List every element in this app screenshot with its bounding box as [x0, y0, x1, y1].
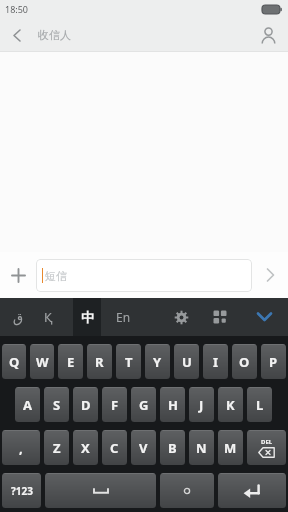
- button[interactable]: R: [87, 344, 112, 379]
- staticText: K: [226, 396, 235, 414]
- button[interactable]: A: [15, 387, 40, 422]
- staticText: Қ: [44, 309, 53, 326]
- button[interactable]: Z: [44, 430, 69, 465]
- button[interactable]: D: [73, 387, 98, 422]
- staticText: Z: [53, 439, 61, 457]
- staticText: O: [239, 353, 250, 371]
- staticText: ?123: [11, 484, 33, 498]
- staticText: I: [213, 353, 219, 371]
- staticText: G: [139, 396, 149, 414]
- button[interactable]: ق: [4, 298, 32, 336]
- button[interactable]: B: [160, 430, 185, 465]
- staticText: T: [125, 353, 133, 371]
- staticText: F: [111, 396, 119, 414]
- staticText: S: [53, 396, 61, 414]
- staticText: DEL: [261, 438, 273, 446]
- button[interactable]: F: [102, 387, 127, 422]
- button[interactable]: [248, 18, 288, 52]
- button[interactable]: ?123: [2, 473, 41, 508]
- button[interactable]: E: [58, 344, 83, 379]
- staticText: J: [199, 396, 204, 414]
- button[interactable]: [0, 252, 36, 298]
- button[interactable]: [218, 473, 286, 508]
- button[interactable]: [0, 18, 34, 52]
- button[interactable]: Q: [2, 344, 26, 379]
- staticText: P: [269, 353, 278, 371]
- button[interactable]: X: [73, 430, 98, 465]
- staticText: Q: [9, 353, 20, 371]
- button[interactable]: U: [174, 344, 199, 379]
- button[interactable]: J: [189, 387, 214, 422]
- button[interactable]: 短信: [36, 259, 252, 292]
- staticText: Y: [153, 353, 162, 371]
- button[interactable]: N: [189, 430, 214, 465]
- button[interactable]: [167, 298, 195, 336]
- button[interactable]: [45, 473, 156, 508]
- staticText: D: [81, 396, 91, 414]
- staticText: U: [182, 353, 192, 371]
- staticText: H: [168, 396, 178, 414]
- staticText: 收信人: [38, 28, 71, 42]
- staticText: L: [256, 396, 264, 414]
- button[interactable]: V: [131, 430, 156, 465]
- staticText: N: [196, 439, 207, 457]
- button[interactable]: ,: [2, 430, 40, 465]
- button[interactable]: [206, 298, 234, 336]
- staticText: M: [224, 439, 237, 457]
- staticText: 中: [81, 309, 94, 325]
- staticText: E: [67, 353, 75, 371]
- staticText: X: [81, 439, 90, 457]
- button[interactable]: [248, 298, 280, 336]
- button[interactable]: C: [102, 430, 127, 465]
- button[interactable]: S: [44, 387, 69, 422]
- button[interactable]: H: [160, 387, 185, 422]
- button[interactable]: [252, 252, 288, 298]
- button[interactable]: L: [247, 387, 272, 422]
- button[interactable]: [160, 473, 214, 508]
- staticText: C: [110, 439, 119, 457]
- staticText: ,: [19, 439, 23, 457]
- button[interactable]: Қ: [34, 298, 62, 336]
- staticText: W: [36, 353, 49, 371]
- staticText: R: [95, 353, 104, 371]
- staticText: ق: [13, 310, 24, 325]
- staticText: V: [139, 439, 148, 457]
- staticText: A: [23, 396, 32, 414]
- button[interactable]: P: [261, 344, 286, 379]
- button[interactable]: M: [218, 430, 243, 465]
- button[interactable]: En: [109, 298, 137, 336]
- staticText: En: [116, 309, 131, 325]
- button[interactable]: DEL: [247, 430, 286, 465]
- button[interactable]: 中: [73, 298, 101, 336]
- button[interactable]: I: [203, 344, 228, 379]
- staticText: B: [168, 439, 177, 457]
- button[interactable]: T: [116, 344, 141, 379]
- button[interactable]: W: [30, 344, 54, 379]
- button[interactable]: G: [131, 387, 156, 422]
- button[interactable]: Y: [145, 344, 170, 379]
- staticText: 短信: [45, 269, 67, 283]
- staticText: 18:50: [5, 3, 29, 15]
- button[interactable]: K: [218, 387, 243, 422]
- button[interactable]: O: [232, 344, 257, 379]
